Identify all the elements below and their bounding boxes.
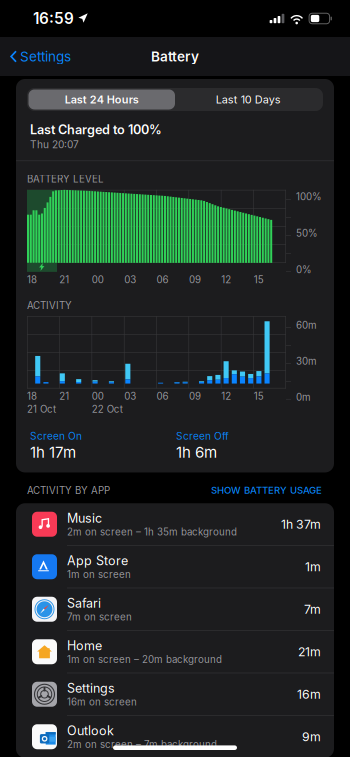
staticText: 18 — [27, 274, 37, 286]
staticText: 06 — [156, 274, 168, 286]
button[interactable]: SHOW BATTERY USAGE — [211, 484, 322, 496]
staticText: 1h 6m — [176, 443, 217, 461]
staticText: 16m on screen — [67, 696, 137, 708]
button[interactable]: Safari — [16, 588, 334, 631]
staticText: 09 — [189, 390, 201, 402]
button[interactable]: Last 10 Days — [175, 89, 321, 109]
staticText: 30m — [296, 355, 317, 367]
staticText: 18 — [27, 390, 37, 402]
staticText: 12 — [221, 274, 231, 286]
staticText: 16m — [297, 687, 321, 702]
staticText: Home — [67, 638, 102, 653]
staticText: 1h 17m — [30, 443, 76, 461]
staticText: Settings — [20, 48, 71, 65]
staticText: 09 — [189, 274, 201, 286]
staticText: 16:59 — [33, 9, 74, 28]
staticText: 03 — [124, 390, 136, 402]
staticText: 0m — [296, 391, 311, 403]
staticText: 7m on screen — [67, 611, 132, 623]
staticText: 1m — [305, 559, 321, 574]
staticText: 50% — [296, 227, 318, 239]
staticText: 21 Oct — [27, 403, 56, 415]
staticText: 21m — [298, 644, 321, 659]
button[interactable]: Home — [16, 631, 334, 673]
staticText: ACTIVITY — [27, 300, 72, 311]
staticText: 100% — [296, 191, 322, 203]
staticText: 06 — [156, 390, 168, 402]
staticText: ACTIVITY BY APP — [27, 484, 110, 496]
staticText: 1m on screen — [67, 569, 131, 580]
staticText: Battery — [151, 48, 199, 65]
staticText: Screen Off — [176, 430, 229, 442]
staticText: BATTERY LEVEL — [27, 173, 104, 185]
staticText: 03 — [124, 274, 136, 286]
staticText: 00 — [92, 274, 104, 286]
button[interactable]: Music — [16, 503, 334, 546]
staticText: Safari — [67, 595, 101, 611]
button[interactable]: Last 24 Hours — [28, 89, 175, 109]
button[interactable]: Settings — [0, 40, 71, 73]
staticText: 15 — [254, 390, 264, 402]
staticText: 00 — [92, 390, 104, 402]
staticText: Thu 20:07 — [30, 138, 79, 151]
staticText: Last 24 Hours — [65, 93, 139, 106]
staticText: 7m — [304, 602, 321, 617]
staticText: SHOW BATTERY USAGE — [211, 484, 322, 496]
staticText: Settings — [67, 680, 115, 696]
staticText: 15 — [254, 274, 264, 286]
staticText: 2m on screen – 1h 35m background — [67, 526, 237, 538]
button[interactable]: Settings — [16, 673, 334, 716]
staticText: 21 — [59, 274, 69, 286]
staticText: Outlook — [67, 723, 114, 738]
staticText: 22 Oct — [92, 403, 123, 415]
staticText: 0% — [296, 264, 312, 276]
staticText: 12 — [221, 390, 231, 402]
staticText: App Store — [67, 553, 128, 568]
staticText: 2m on screen – 7m background — [67, 739, 217, 750]
staticText: 9m — [302, 729, 321, 744]
staticText: Music — [67, 510, 102, 526]
staticText: 60m — [296, 319, 317, 331]
staticText: Last 10 Days — [216, 93, 281, 106]
staticText: Last Charged to 100% — [30, 122, 162, 137]
button[interactable]: App Store — [16, 546, 334, 588]
staticText: Screen On — [30, 430, 82, 442]
button[interactable]: Outlook — [16, 716, 334, 757]
staticText: 1h 37m — [281, 517, 321, 532]
staticText: 21 — [59, 390, 69, 402]
staticText: 1m on screen – 20m background — [67, 654, 222, 665]
